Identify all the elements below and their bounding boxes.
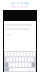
staticText: Tap to send [12,5,28,8]
staticText: Type a message [10,1,30,5]
